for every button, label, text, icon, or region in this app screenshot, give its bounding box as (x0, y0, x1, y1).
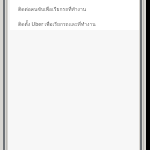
button[interactable]: ติดต่อคนขับเพื่อเรียกรถที่ทำงาน (10, 3, 139, 15)
staticText: ติดตั้ง Uber เพื่อเรียกรถและที่ทำงาน (18, 20, 96, 28)
button[interactable]: ติดตั้ง Uber เพื่อเรียกรถและที่ทำงาน (10, 18, 139, 30)
staticText: ติดต่อคนขับเพื่อเรียกรถที่ทำงาน (18, 5, 87, 13)
